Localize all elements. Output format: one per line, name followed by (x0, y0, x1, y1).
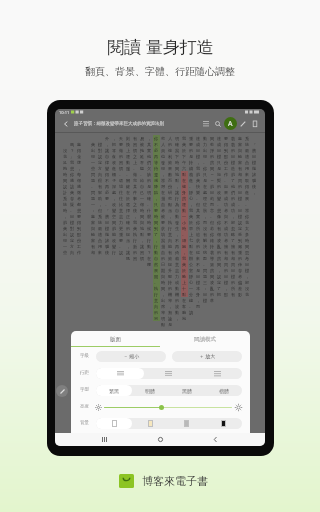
staticText: 間 (245, 244, 250, 249)
staticText: 也 (161, 154, 166, 159)
staticText: 習 (133, 142, 138, 147)
button[interactable]: Home (154, 433, 167, 446)
staticText: 系 (63, 196, 68, 201)
staticText: 那 (224, 154, 229, 159)
button[interactable]: － 縮小 (96, 351, 166, 362)
button[interactable]: Contents (200, 118, 212, 130)
button[interactable]: Line spacing 2 (193, 368, 242, 379)
staticText: 設 (119, 250, 124, 255)
staticText: 複 (168, 148, 173, 153)
staticText: 間 (161, 286, 166, 291)
staticText: 重 (119, 232, 124, 237)
staticText: 泡 (182, 316, 187, 321)
button[interactable]: 黑體 (168, 385, 205, 396)
staticText: 上 (182, 280, 187, 285)
staticText: 們 (231, 190, 236, 195)
staticText: ， (112, 196, 117, 201)
button[interactable]: ＋ 放大 (172, 351, 242, 362)
staticText: 血 (161, 250, 166, 255)
staticText: 到 (77, 226, 82, 231)
button[interactable]: Line spacing 1 (144, 368, 193, 379)
button[interactable]: 閱讀模式 (160, 331, 250, 347)
button[interactable]: Bookmark (249, 118, 261, 130)
button[interactable]: 明體 (132, 385, 168, 396)
staticText: 但 (196, 202, 201, 207)
staticText: 顯 (161, 322, 166, 327)
staticText: 精 (189, 172, 194, 177)
staticText: 標 (252, 160, 257, 165)
staticText: 者 (238, 274, 243, 279)
staticText: 標 (217, 154, 222, 159)
staticText: 最 (245, 148, 250, 153)
staticText: 公 (189, 262, 194, 267)
button[interactable]: Back (60, 118, 71, 129)
staticText: 沒 (63, 148, 68, 153)
staticText: 靜 (189, 190, 194, 195)
staticText: 處 (112, 190, 117, 195)
staticText: 成 (217, 142, 222, 147)
button[interactable]: Search (212, 118, 224, 130)
staticText: 只 (217, 160, 222, 165)
staticText: 標 (231, 160, 236, 165)
staticText: 是 (147, 184, 152, 189)
staticText: 讓 (126, 250, 131, 255)
staticText: 究 (168, 196, 173, 201)
staticText: 是 (189, 154, 194, 159)
staticText: 慣 (119, 166, 124, 171)
button[interactable]: Theme 1 (96, 418, 132, 429)
staticText: 往 (119, 190, 124, 195)
staticText: 行距 (80, 370, 89, 376)
staticText: 其 (147, 142, 152, 147)
staticText: 會 (189, 214, 194, 219)
staticText: 十 (182, 286, 187, 291)
staticText: 時 (63, 172, 68, 177)
staticText: 捐 (161, 196, 166, 201)
staticText: 行 (154, 244, 159, 249)
button[interactable]: Back (209, 433, 222, 446)
staticText: 目 (252, 154, 257, 159)
staticText: － 縮小 (123, 353, 140, 360)
button[interactable]: Theme 4 (205, 418, 242, 429)
staticText: 博客來電子書 (142, 474, 208, 488)
staticText: 標 (224, 280, 229, 285)
staticText: 或 (175, 280, 180, 285)
staticText: 候 (147, 226, 152, 231)
staticText: 合 (245, 160, 250, 165)
button[interactable]: 楷體 (205, 385, 242, 396)
staticText: 的 (168, 286, 173, 291)
button[interactable]: Theme 2 (132, 418, 168, 429)
staticText: 鐘 (189, 298, 194, 303)
button[interactable]: Highlight (237, 118, 249, 130)
button[interactable]: Edit (56, 385, 68, 397)
staticText: 因 (203, 256, 208, 261)
button[interactable]: Account (224, 117, 237, 130)
button[interactable]: Brightness (159, 405, 164, 410)
button[interactable]: Theme 3 (168, 418, 205, 429)
button[interactable]: 繁黑 (96, 385, 132, 396)
staticText: 的 (238, 184, 243, 189)
staticText: 而 (210, 202, 215, 207)
staticText: 一 (189, 286, 194, 291)
staticText: 腦 (105, 244, 110, 249)
staticText: 動 (175, 286, 180, 291)
button[interactable]: Line spacing 0 (96, 368, 144, 379)
staticText: 拖 (140, 148, 145, 153)
staticText: 發 (175, 220, 180, 225)
staticText: 會 (196, 178, 201, 183)
staticText: 自 (140, 184, 145, 189)
staticText: 向 (154, 304, 159, 309)
staticText: 不 (154, 142, 159, 147)
staticText: ， (189, 202, 194, 207)
button[interactable]: 版面 (71, 331, 160, 347)
staticText: 求 (196, 238, 201, 243)
button[interactable]: Recents (98, 433, 111, 446)
staticText: 延 (140, 154, 145, 159)
staticText: 利 (168, 154, 173, 159)
staticText: 自 (175, 208, 180, 213)
staticText: 我 (196, 166, 201, 171)
staticText: ， (231, 214, 236, 219)
staticText: 功 (224, 202, 229, 207)
